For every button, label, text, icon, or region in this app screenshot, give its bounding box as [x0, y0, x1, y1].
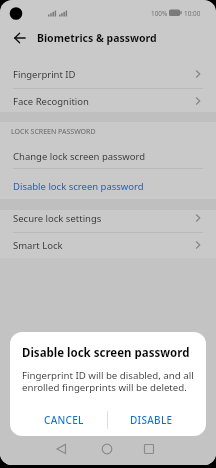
button[interactable]: Change lock screen password	[0, 143, 216, 169]
button[interactable]	[50, 438, 72, 460]
staticText: CANCEL	[44, 413, 84, 427]
button[interactable]: Disable lock screen password	[0, 173, 216, 199]
staticText: Secure lock settings	[13, 212, 102, 225]
button[interactable]: Face Recognition	[0, 88, 216, 114]
button[interactable]	[138, 438, 160, 460]
staticText: Smart Lock	[13, 239, 63, 252]
button[interactable]: Smart Lock	[0, 232, 216, 258]
staticText: 10:00	[184, 9, 201, 18]
staticText: Biometrics & password	[37, 31, 157, 45]
button[interactable]: DISABLE	[108, 403, 206, 436]
button[interactable]: Fingerprint ID	[0, 61, 216, 87]
button[interactable]: Secure lock settings	[0, 205, 216, 231]
staticText: Disable lock screen password	[13, 180, 144, 193]
button[interactable]	[96, 438, 118, 460]
button[interactable]: CANCEL	[10, 403, 107, 436]
staticText: Disable lock screen password	[22, 345, 190, 359]
button[interactable]	[10, 29, 30, 47]
staticText: Face Recognition	[13, 95, 89, 108]
staticText: Fingerprint ID will be disabled, and all…	[22, 369, 194, 394]
staticText: DISABLE	[130, 413, 173, 427]
staticText: Fingerprint ID	[13, 68, 76, 81]
staticText: 100%	[151, 9, 168, 18]
staticText: Change lock screen password	[13, 150, 146, 163]
staticText: LOCK SCREEN PASSWORD	[11, 127, 96, 137]
